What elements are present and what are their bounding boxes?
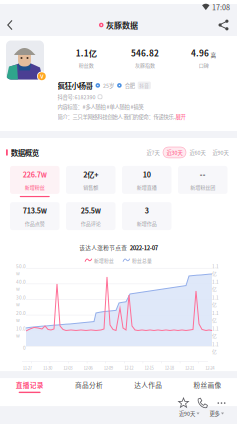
staticText: 展开: [175, 113, 185, 121]
staticText: 粉丝画像: [193, 380, 221, 390]
staticText: 作品评论: [81, 220, 101, 227]
staticText: 抖音号: 6182390: [57, 93, 95, 101]
staticText: 4.96: [191, 47, 209, 59]
staticText: 10.0w: [16, 325, 26, 339]
staticText: 达人作品: [134, 380, 162, 390]
staticText: 50.0w: [16, 263, 26, 276]
staticText: 新增粉丝团: [190, 183, 215, 191]
staticText: 合肥: [125, 81, 135, 89]
staticText: 17:08: [212, 2, 230, 12]
staticText: 25.5w: [81, 205, 101, 216]
button[interactable]: 10: [122, 166, 171, 197]
staticText: 12-09: [104, 365, 113, 371]
staticText: 高: [210, 51, 216, 59]
staticText: 该达人涨粉节点查: [79, 243, 127, 252]
button[interactable]: 2亿+: [66, 166, 115, 197]
staticText: 疯狂小杨哥: [57, 80, 92, 91]
button[interactable]: 25.5w: [66, 202, 115, 233]
button[interactable]: 713.5w: [10, 202, 59, 233]
staticText: 1.1亿: [76, 47, 97, 59]
staticText: 更多: [209, 410, 219, 417]
staticText: 新增直播: [137, 183, 157, 191]
button[interactable]: 近7天: [143, 147, 163, 158]
staticText: 新增作品: [137, 220, 157, 227]
staticText: 12-18: [165, 365, 174, 371]
button[interactable]: 联系: [193, 397, 212, 409]
staticText: 简介：三只羊网络科技创始人 我们的使命：传递快乐..: [57, 113, 175, 121]
staticText: 1.1亿: [212, 341, 219, 354]
staticText: 3: [145, 205, 149, 216]
button[interactable]: 更多: [212, 397, 231, 409]
button[interactable]: 226.7w: [10, 166, 59, 197]
staticText: 25岁: [103, 81, 114, 89]
button[interactable]: 收藏: [174, 397, 193, 409]
staticText: 灰豚指数: [135, 61, 155, 69]
button[interactable]: 商品分析: [59, 374, 118, 397]
staticText: 11-27: [23, 365, 32, 371]
staticText: --: [200, 169, 206, 179]
staticText: 12-21: [185, 365, 194, 371]
button[interactable]: 更多: [204, 408, 229, 419]
staticText: 新增粉丝: [25, 183, 45, 191]
staticText: 713.5w: [23, 205, 47, 216]
staticText: 新增粉丝: [94, 257, 114, 264]
staticText: 12-12: [124, 365, 133, 371]
button[interactable]: 返回: [0, 14, 23, 36]
button[interactable]: 近90天: [174, 408, 204, 419]
button[interactable]: 直播记录: [0, 374, 59, 397]
staticText: 546.82: [131, 47, 159, 59]
staticText: 近90天: [179, 410, 195, 417]
staticText: 30.0w: [16, 294, 26, 308]
staticText: 11-30: [43, 365, 52, 371]
staticText: 作品点赞: [25, 220, 45, 227]
button[interactable]: 分享: [208, 14, 237, 35]
staticText: 商品分析: [75, 380, 103, 390]
staticText: 销售额: [83, 183, 98, 191]
staticText: 粉丝总量: [132, 257, 152, 264]
staticText: V: [40, 72, 43, 80]
staticText: 12-03: [63, 365, 72, 371]
staticText: 近7天: [146, 149, 159, 156]
button[interactable]: 近90天: [209, 147, 232, 158]
staticText: 1.1亿: [212, 294, 219, 308]
staticText: 1.1亿: [212, 278, 219, 292]
staticText: 内容标签：#多人随拍 #单人随拍 #搞笑: [57, 103, 143, 111]
staticText: 2亿+: [83, 169, 98, 179]
staticText: 12-15: [144, 365, 153, 371]
button[interactable]: 粉丝画像: [178, 374, 237, 397]
staticText: 近30天: [166, 149, 182, 156]
staticText: 40.0w: [16, 278, 26, 292]
staticText: 2022-12-07: [130, 243, 158, 252]
button[interactable]: 近60天: [186, 147, 209, 158]
staticText: 数据概览: [11, 147, 39, 158]
staticText: 12-06: [84, 365, 93, 371]
staticText: 20.0w: [16, 309, 26, 323]
button[interactable]: 达人作品: [118, 374, 178, 397]
staticText: 0: [23, 344, 26, 351]
button[interactable]: 3: [122, 202, 171, 233]
staticText: 1.1亿: [212, 309, 219, 323]
staticText: 1.1亿: [212, 325, 219, 339]
staticText: 直播记录: [16, 380, 44, 390]
staticText: 抖音: [139, 82, 149, 89]
staticText: 226.7w: [23, 169, 47, 179]
staticText: 粉丝数: [79, 61, 94, 69]
staticText: 10: [143, 169, 151, 179]
staticText: 近90天: [212, 149, 228, 156]
staticText: 12-24: [205, 365, 214, 371]
staticText: 灰豚数据: [106, 19, 138, 31]
staticText: 近60天: [189, 149, 205, 156]
staticText: 1.1亿: [212, 263, 219, 276]
button[interactable]: 近30天: [163, 147, 186, 158]
staticText: 口碑: [199, 61, 209, 69]
button[interactable]: --: [178, 166, 227, 197]
